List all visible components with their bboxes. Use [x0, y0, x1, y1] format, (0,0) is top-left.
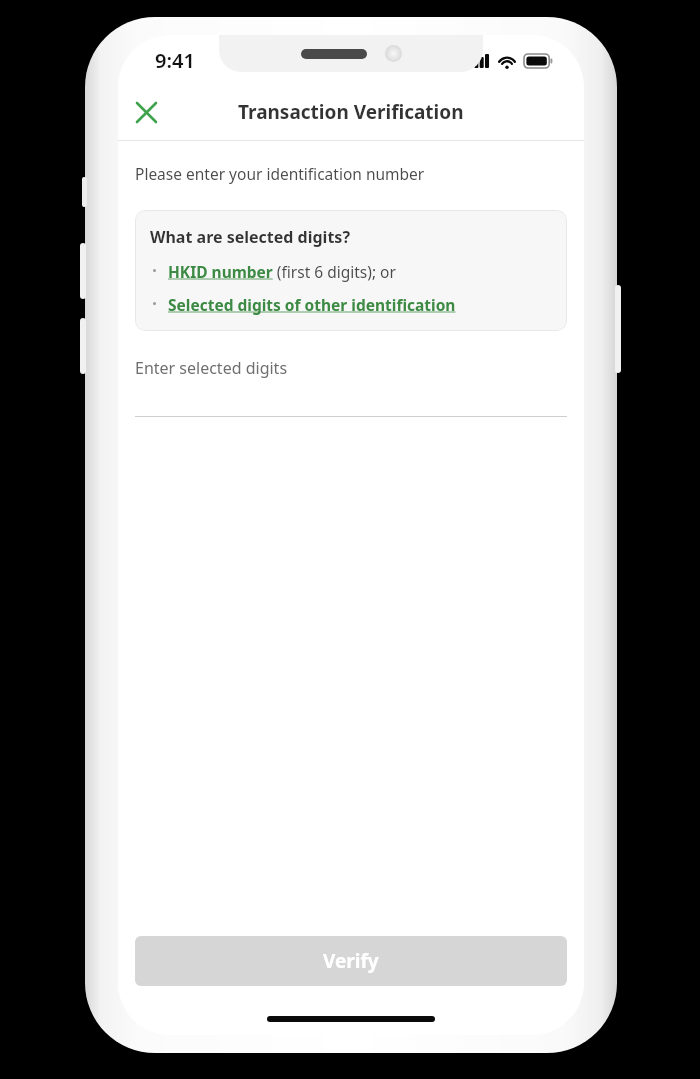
staticText: Verify	[323, 948, 379, 974]
button[interactable]: HKID number (first 6 digits); or	[150, 261, 552, 282]
button[interactable]: Selected digits of other identification	[150, 294, 552, 315]
staticText: Transaction Verification	[238, 99, 464, 125]
staticText: Enter selected digits	[135, 357, 288, 379]
staticText: Please enter your identification number	[135, 163, 425, 184]
staticText: Selected digits of other identification	[168, 294, 456, 315]
staticText: HKID number (first 6 digits); or	[168, 261, 396, 282]
button[interactable]: Close	[124, 90, 168, 134]
staticText: 9:41	[155, 47, 195, 74]
staticText: What are selected digits?	[150, 226, 351, 248]
button[interactable]: Verify	[135, 936, 567, 986]
